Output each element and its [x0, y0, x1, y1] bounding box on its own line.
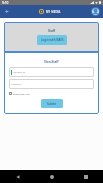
button[interactable]: Password: [9, 79, 94, 89]
button[interactable]: Navigate up: [0, 5, 13, 18]
button[interactable]: Remember me: [9, 92, 30, 95]
staticText: Member ID: [13, 71, 26, 74]
staticText: Staff: [4, 29, 99, 33]
button[interactable]: Back: [0, 170, 35, 183]
button[interactable]: Submit: [41, 99, 63, 108]
staticText: Login with NAVS: [41, 38, 64, 42]
staticText: 9:10: [2, 1, 9, 5]
staticText: Password: [11, 83, 22, 86]
staticText: Submit: [47, 102, 57, 106]
button[interactable]: Recent apps: [69, 170, 103, 183]
staticText: MY MEDIA: [46, 10, 61, 14]
staticText: Remember me: [13, 92, 30, 95]
button[interactable]: Member ID: [9, 67, 94, 77]
staticText: Non-Staff: [4, 60, 99, 64]
button[interactable]: Home: [35, 170, 69, 183]
button[interactable]: Account: [91, 7, 100, 16]
button[interactable]: Login with NAVS: [37, 35, 67, 45]
